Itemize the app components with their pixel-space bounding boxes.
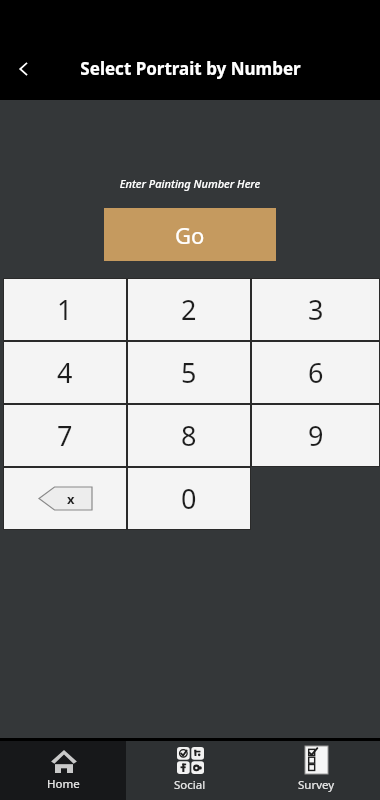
button[interactable]: 5 xyxy=(127,341,251,404)
staticText: 6 xyxy=(308,354,324,391)
staticText: 0 xyxy=(181,480,197,517)
button[interactable]: Survey xyxy=(253,741,380,800)
staticText: 8 xyxy=(181,417,197,454)
button[interactable]: Back xyxy=(0,45,48,93)
staticText: 1 xyxy=(57,291,73,328)
staticText: Select Portrait by Number xyxy=(80,57,301,80)
staticText: 7 xyxy=(57,417,73,454)
button[interactable]: 6 xyxy=(251,341,380,404)
button[interactable]: 2 xyxy=(127,278,251,341)
staticText: 5 xyxy=(181,354,197,391)
staticText: Go xyxy=(175,220,205,250)
staticText: Enter Painting Number Here xyxy=(0,176,380,191)
button[interactable]: Go xyxy=(104,208,276,261)
staticText: 9 xyxy=(308,417,324,454)
button[interactable]: Social xyxy=(126,741,253,800)
button[interactable]: 4 xyxy=(3,341,127,404)
staticText: x xyxy=(67,490,75,508)
button[interactable]: 9 xyxy=(251,404,380,467)
staticText: Home xyxy=(47,776,80,792)
button[interactable]: Backspace xyxy=(3,467,127,530)
staticText: Social xyxy=(174,777,206,793)
button[interactable]: 1 xyxy=(3,278,127,341)
button[interactable]: 0 xyxy=(127,467,251,530)
staticText: Survey xyxy=(298,777,335,793)
button[interactable]: 7 xyxy=(3,404,127,467)
staticText: 2 xyxy=(181,291,197,328)
button[interactable]: Home xyxy=(0,741,126,800)
button[interactable]: 3 xyxy=(251,278,380,341)
staticText: 4 xyxy=(57,354,73,391)
staticText: 3 xyxy=(308,291,324,328)
button[interactable]: 8 xyxy=(127,404,251,467)
